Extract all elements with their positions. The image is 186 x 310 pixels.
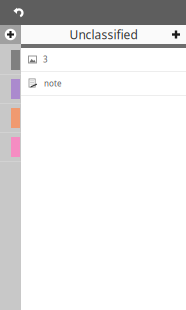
button[interactable]: Colour group 2: [0, 75, 21, 104]
button[interactable]: Colour group 4: [0, 133, 21, 162]
staticText: 3: [43, 54, 48, 65]
button[interactable]: Add item: [166, 25, 186, 44]
button[interactable]: 3: [21, 48, 186, 71]
button[interactable]: note: [21, 72, 186, 95]
button[interactable]: Undo: [0, 0, 32, 25]
button[interactable]: Colour group 1: [0, 46, 21, 75]
button[interactable]: Colour group 3: [0, 104, 21, 133]
staticText: Unclassified: [69, 26, 137, 42]
staticText: note: [44, 78, 62, 89]
button[interactable]: New collection: [0, 25, 21, 44]
